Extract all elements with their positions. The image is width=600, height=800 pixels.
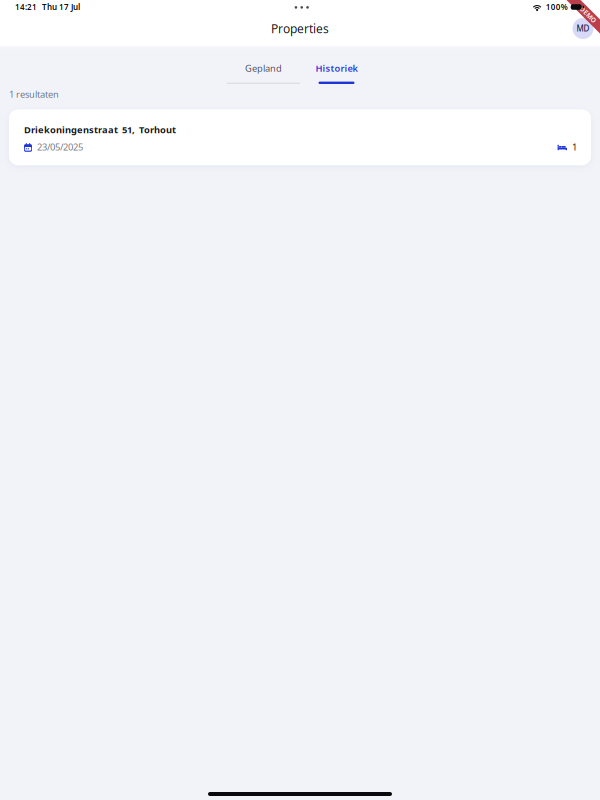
button[interactable]: Driekoningenstraat 51, Torhout: [9, 109, 591, 165]
staticText: 1: [572, 141, 577, 153]
button[interactable]: Historiek: [300, 63, 373, 84]
button[interactable]: Account menu: [570, 15, 596, 41]
staticText: 23/05/2025: [37, 141, 83, 153]
staticText: Historiek: [315, 62, 357, 74]
staticText: 1 resultaten: [9, 88, 59, 100]
staticText: Thu 17 Jul: [42, 2, 80, 12]
staticText: Driekoningenstraat 51, Torhout: [24, 123, 176, 136]
button[interactable]: Gepland: [227, 63, 300, 84]
staticText: 14:21: [15, 2, 37, 12]
staticText: 100%: [546, 2, 568, 12]
staticText: DEMO: [578, 10, 598, 19]
staticText: Gepland: [245, 62, 282, 74]
staticText: MD: [576, 23, 589, 34]
staticText: Properties: [271, 20, 329, 36]
